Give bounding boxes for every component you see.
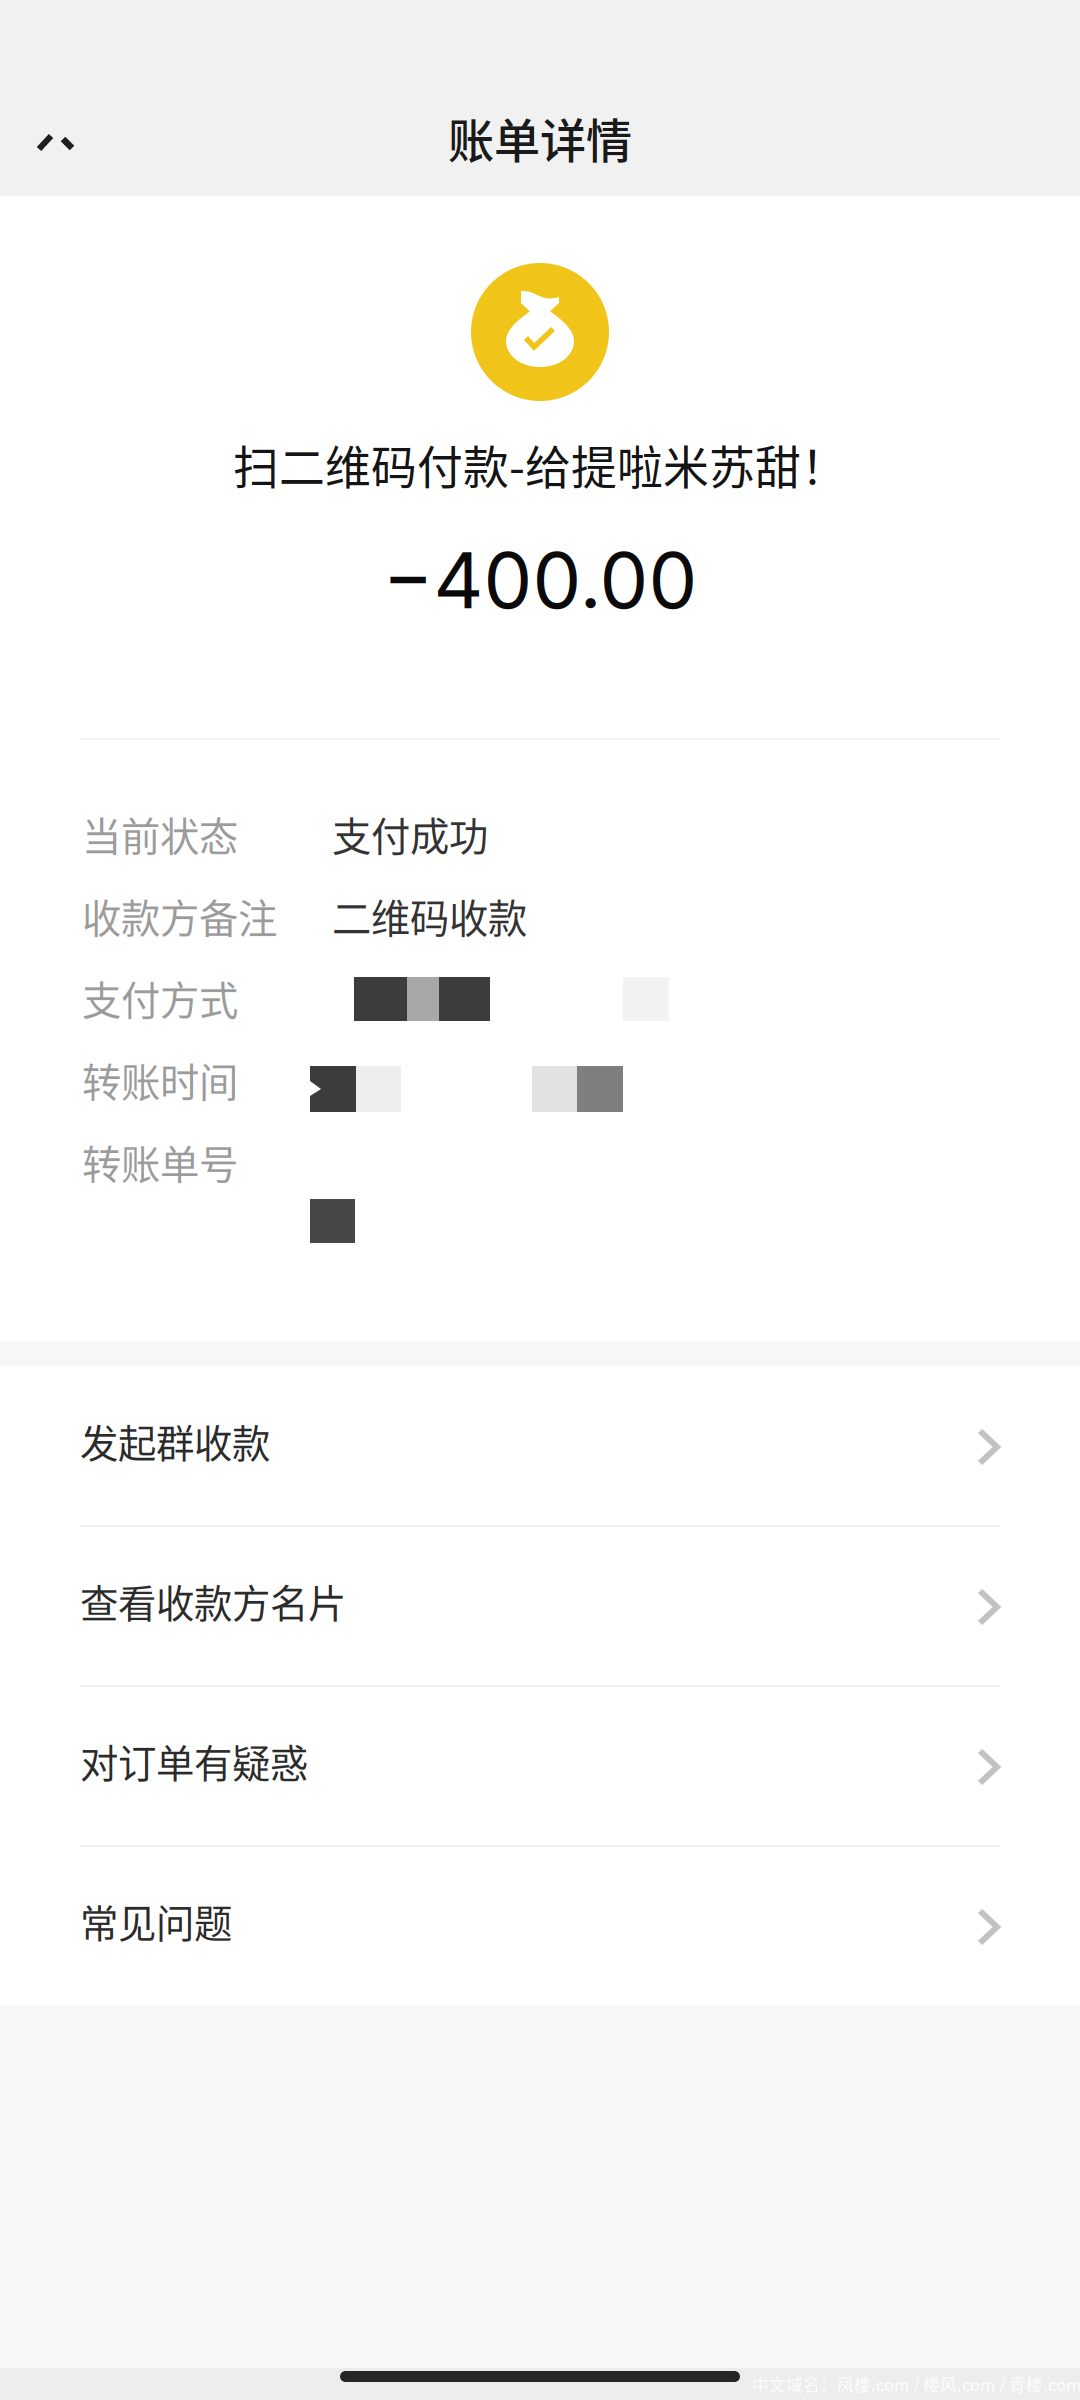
button[interactable]: 查看收款方名片 — [0, 1526, 1080, 1686]
staticText: 扫二维码付款-给提啦米苏甜！ — [233, 431, 847, 497]
staticText: 常见问题 — [80, 1893, 232, 1949]
button[interactable]: 对订单有疑惑 — [0, 1686, 1080, 1846]
staticText: 对订单有疑惑 — [80, 1733, 308, 1789]
staticText: 当前状态 — [82, 805, 238, 862]
staticText: 收款方备注 — [82, 887, 277, 944]
button[interactable]: 常见问题 — [0, 1846, 1080, 2006]
staticText: 转账单号 — [82, 1133, 238, 1190]
button[interactable]: 发起群收款 — [0, 1366, 1080, 1526]
staticText: 中文域名：凤楼.com / 楼风.com / 青楼.com — [752, 2372, 1080, 2396]
staticText: −400.00 — [382, 533, 697, 627]
staticText: 支付方式 — [82, 969, 238, 1026]
staticText: 支付成功 — [332, 805, 488, 862]
staticText: 转账时间 — [82, 1051, 238, 1108]
staticText: 发起群收款 — [80, 1413, 270, 1469]
staticText: 查看收款方名片 — [80, 1573, 346, 1629]
staticText: 二维码收款 — [332, 887, 527, 944]
staticText: 账单详情 — [448, 105, 632, 171]
button[interactable]: Back — [0, 100, 150, 196]
